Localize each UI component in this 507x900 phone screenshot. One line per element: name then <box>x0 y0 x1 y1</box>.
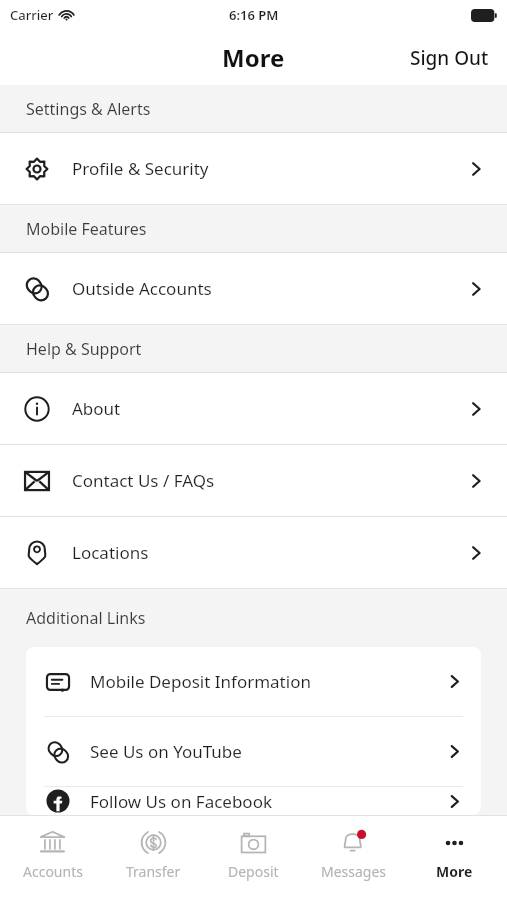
staticText: Accounts <box>23 862 83 881</box>
staticText: Locations <box>72 541 467 564</box>
staticText: Messages <box>321 862 387 881</box>
staticText: See Us on YouTube <box>90 740 446 763</box>
staticText: Follow Us on Facebook <box>90 790 446 813</box>
staticText: More <box>436 862 473 881</box>
other: More <box>441 829 468 856</box>
other: About <box>24 396 50 422</box>
button[interactable]: Messages <box>306 816 401 881</box>
staticText: Outside Accounts <box>72 277 467 300</box>
button[interactable]: About <box>0 373 507 445</box>
button[interactable]: Facebook <box>26 787 481 815</box>
button[interactable]: Link <box>26 717 481 787</box>
staticText: Transfer <box>126 862 181 881</box>
button[interactable]: Locations <box>0 517 507 589</box>
staticText: Help & Support <box>26 338 142 360</box>
staticText: Mobile Deposit Information <box>90 670 446 693</box>
staticText: Deposit <box>228 862 279 881</box>
button[interactable]: Mobile Deposit <box>26 647 481 717</box>
other: Link <box>24 276 50 302</box>
staticText: 6:16 PM <box>229 6 279 24</box>
button[interactable]: Settings <box>0 133 507 205</box>
other: Mobile Deposit <box>46 670 70 694</box>
button[interactable]: Accounts <box>5 816 100 881</box>
staticText: Profile & Security <box>72 157 467 180</box>
other: Facebook <box>46 789 70 813</box>
other: Transfer <box>140 829 167 856</box>
staticText: Mobile Features <box>26 218 147 240</box>
staticText: Contact Us / FAQs <box>72 469 467 492</box>
other: Accounts <box>39 829 66 856</box>
other: Contact Us <box>24 468 50 494</box>
button[interactable]: Contact Us <box>0 445 507 517</box>
other: Link <box>46 740 70 764</box>
staticText: Sign Out <box>410 45 489 71</box>
staticText: Additional Links <box>26 607 146 629</box>
staticText: More <box>222 41 285 74</box>
button[interactable]: Link <box>0 253 507 325</box>
other: Messages <box>340 829 367 856</box>
button[interactable]: Deposit <box>206 816 301 881</box>
other: Settings <box>24 156 50 182</box>
staticText: Settings & Alerts <box>26 98 151 120</box>
other: Locations <box>24 540 50 566</box>
button[interactable]: Sign Out <box>392 37 507 79</box>
button[interactable]: Transfer <box>106 816 201 881</box>
other: Deposit <box>240 829 267 856</box>
button[interactable]: More <box>407 816 502 881</box>
staticText: Carrier <box>10 6 54 24</box>
staticText: About <box>72 397 467 420</box>
